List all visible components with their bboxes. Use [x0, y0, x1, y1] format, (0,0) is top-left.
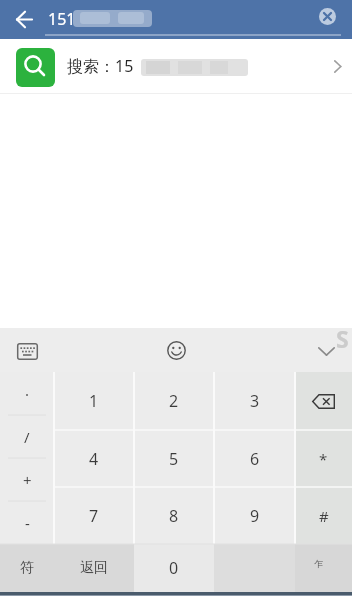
button[interactable]: [8, 336, 46, 366]
button[interactable]: [319, 8, 336, 25]
staticText: 返回: [80, 559, 108, 577]
button[interactable]: [8, 5, 40, 33]
button[interactable]: /: [0, 415, 54, 458]
staticText: #: [319, 506, 329, 526]
button[interactable]: +: [0, 458, 54, 501]
button[interactable]: 4: [54, 430, 134, 487]
staticText: 151: [48, 8, 76, 30]
staticText: S: [336, 323, 349, 354]
staticText: /: [24, 427, 30, 447]
button[interactable]: #: [295, 487, 352, 544]
staticText: ·: [25, 384, 30, 404]
staticText: 搜索：15: [67, 55, 134, 77]
button[interactable]: 返回: [54, 544, 134, 592]
staticText: 0: [169, 557, 179, 579]
button[interactable]: 1: [54, 372, 134, 430]
staticText: 8: [169, 505, 179, 527]
button[interactable]: *: [295, 430, 352, 487]
staticText: -: [25, 513, 30, 533]
staticText: 2: [169, 390, 179, 412]
button[interactable]: 7: [54, 487, 134, 544]
staticText: 7: [89, 505, 99, 527]
button[interactable]: [295, 544, 352, 592]
staticText: *: [319, 449, 328, 469]
staticText: 9: [250, 505, 260, 527]
staticText: 1: [89, 390, 99, 412]
button[interactable]: 6: [214, 430, 295, 487]
button[interactable]: 2: [134, 372, 214, 430]
button[interactable]: 搜索：15: [0, 39, 352, 94]
staticText: 3: [250, 390, 260, 412]
staticText: 乍: [314, 558, 323, 569]
button[interactable]: [295, 372, 352, 430]
button[interactable]: [158, 335, 194, 365]
button[interactable]: ·: [0, 372, 54, 415]
button[interactable]: 5: [134, 430, 214, 487]
button[interactable]: 符: [0, 544, 54, 592]
button[interactable]: 3: [214, 372, 295, 430]
button[interactable]: [308, 336, 344, 366]
button[interactable]: 9: [214, 487, 295, 544]
staticText: +: [23, 470, 32, 490]
button[interactable]: 8: [134, 487, 214, 544]
staticText: 6: [250, 448, 260, 470]
button[interactable]: 0: [134, 544, 214, 592]
staticText: 4: [89, 448, 99, 470]
staticText: 5: [169, 448, 179, 470]
button[interactable]: -: [0, 501, 54, 544]
staticText: 符: [20, 559, 34, 577]
